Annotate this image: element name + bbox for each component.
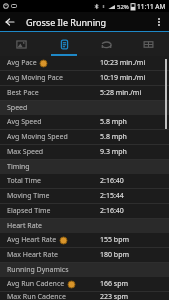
button[interactable]: Avg Moving Speed — [0, 130, 169, 144]
button[interactable]: Max Heart Rate — [0, 248, 169, 262]
staticText: Elapsed Time — [7, 206, 51, 216]
staticText: Avg Pace — [7, 58, 37, 68]
staticText: 9.3 mph — [100, 147, 127, 157]
button[interactable]: Moving Time — [0, 189, 169, 203]
staticText: Max Heart Rate — [7, 250, 58, 260]
staticText: Grosse Ile Running — [26, 16, 107, 28]
staticText: 11:11 AM — [137, 2, 166, 11]
staticText: Moving Time — [7, 191, 50, 201]
button[interactable]: Laps — [85, 32, 127, 56]
staticText: 2:15:44 — [100, 191, 124, 201]
button[interactable]: Avg Run Cadence — [0, 277, 169, 291]
staticText: 2:16:40 — [100, 176, 124, 186]
button[interactable]: Best Pace — [0, 86, 169, 100]
staticText: Timing — [7, 162, 30, 172]
staticText: 5:28 min./mi — [100, 88, 142, 98]
staticText: Avg Run Cadence — [7, 279, 65, 289]
staticText: Avg Moving Pace — [7, 73, 63, 83]
button[interactable]: Back — [0, 12, 20, 32]
button[interactable]: Avg Heart Rate — [0, 233, 169, 247]
staticText: 223 spm — [100, 292, 129, 300]
button[interactable]: More options — [149, 12, 169, 32]
staticText: 180 bpm — [100, 250, 129, 260]
button[interactable]: Max Run Cadence — [0, 292, 169, 300]
staticText: Best Pace — [7, 88, 39, 98]
staticText: Avg Moving Speed — [7, 132, 68, 142]
staticText: 5.8 mph — [100, 117, 127, 127]
button[interactable]: Avg Moving Pace — [0, 71, 169, 85]
button[interactable]: Avg Pace — [0, 56, 169, 70]
staticText: 52% — [117, 3, 129, 11]
staticText: Heart Rate — [7, 221, 43, 231]
staticText: 5.8 mph — [100, 132, 127, 142]
staticText: Avg Speed — [7, 117, 42, 127]
staticText: Total Time — [7, 176, 41, 186]
button[interactable]: Splits — [127, 32, 169, 56]
staticText: Speed — [7, 103, 28, 113]
staticText: 10:23 min./mi — [100, 58, 146, 68]
button[interactable]: Total Time — [0, 174, 169, 188]
button[interactable]: Elapsed Time — [0, 204, 169, 218]
staticText: Max Run Cadence — [7, 292, 66, 300]
button[interactable]: Map — [0, 32, 43, 56]
staticText: 2:16:40 — [100, 206, 124, 216]
staticText: Avg Heart Rate — [7, 235, 57, 245]
button[interactable]: Stats — [43, 32, 85, 56]
button[interactable]: Avg Speed — [0, 115, 169, 129]
button[interactable]: Max Speed — [0, 145, 169, 159]
staticText: Max Speed — [7, 147, 44, 157]
staticText: 155 bpm — [100, 235, 129, 245]
staticText: Running Dynamics — [7, 265, 69, 275]
staticText: 166 spm — [100, 279, 129, 289]
staticText: 10:19 min./mi — [100, 73, 146, 83]
